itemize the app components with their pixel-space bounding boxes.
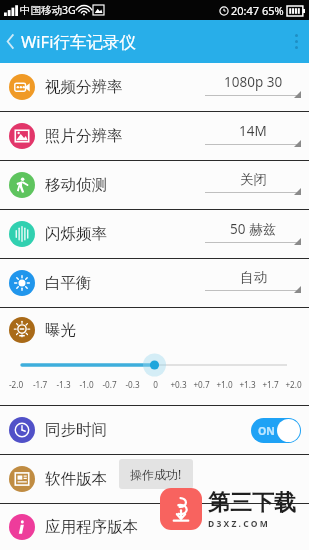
staticText: -1.3 <box>52 379 75 390</box>
staticText: 中国移动3G <box>20 3 76 17</box>
staticText: 操作成功! <box>130 466 182 482</box>
button[interactable]: 视频分辨率 <box>0 63 309 111</box>
button[interactable]: 照片分辨率 <box>0 112 309 160</box>
staticText: 0 <box>144 379 167 390</box>
staticText: 关闭 <box>240 171 267 188</box>
staticText: 14M <box>239 122 267 140</box>
staticText: +0.3 <box>167 379 190 390</box>
staticText: 20:47 65% <box>231 3 284 18</box>
staticText: -1.7 <box>28 379 52 390</box>
staticText: -0.3 <box>121 379 144 390</box>
button[interactable]: Exposure slider <box>0 351 309 379</box>
button[interactable]: 应用程序版本 <box>0 504 309 550</box>
button[interactable]: 白平衡 <box>0 259 309 307</box>
button[interactable]: More options <box>284 25 309 58</box>
staticText: ON <box>258 424 275 438</box>
button[interactable]: Back <box>0 25 19 58</box>
staticText: 移动侦测 <box>45 175 107 195</box>
button[interactable]: 软件版本 <box>0 455 309 503</box>
staticText: +2.0 <box>282 379 305 390</box>
staticText: WiFi行车记录仪 <box>21 30 136 53</box>
staticText: +1.7 <box>259 379 282 390</box>
staticText: 闪烁频率 <box>45 224 107 244</box>
staticText: +1.0 <box>213 379 236 390</box>
staticText: 第三下载 <box>208 489 296 517</box>
staticText: 同步时间 <box>45 420 107 440</box>
staticText: -2.0 <box>4 379 28 390</box>
staticText: 曝光 <box>45 320 76 340</box>
button[interactable]: 移动侦测 <box>0 161 309 209</box>
staticText: 应用程序版本 <box>45 517 138 537</box>
staticText: 1080p 30 <box>224 73 283 91</box>
staticText: 50 赫兹 <box>230 220 276 238</box>
staticText: -0.7 <box>98 379 121 390</box>
button[interactable]: Sync time toggle, on <box>251 418 301 443</box>
staticText: +1.3 <box>236 379 259 390</box>
staticText: 视频分辨率 <box>45 77 123 97</box>
staticText: 照片分辨率 <box>45 126 123 146</box>
button[interactable]: 同步时间 <box>0 406 309 454</box>
staticText: +0.7 <box>190 379 213 390</box>
staticText: 软件版本 <box>45 469 107 489</box>
staticText: D 3 X Z . C O M <box>208 518 268 530</box>
staticText: 白平衡 <box>45 273 92 293</box>
button[interactable]: 闪烁频率 <box>0 210 309 258</box>
staticText: -1.0 <box>75 379 98 390</box>
staticText: 自动 <box>240 269 267 286</box>
